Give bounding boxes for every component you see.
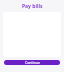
staticText: Continue <box>25 60 40 65</box>
staticText: Pay bills <box>22 3 43 10</box>
button[interactable]: Continue <box>4 60 60 65</box>
